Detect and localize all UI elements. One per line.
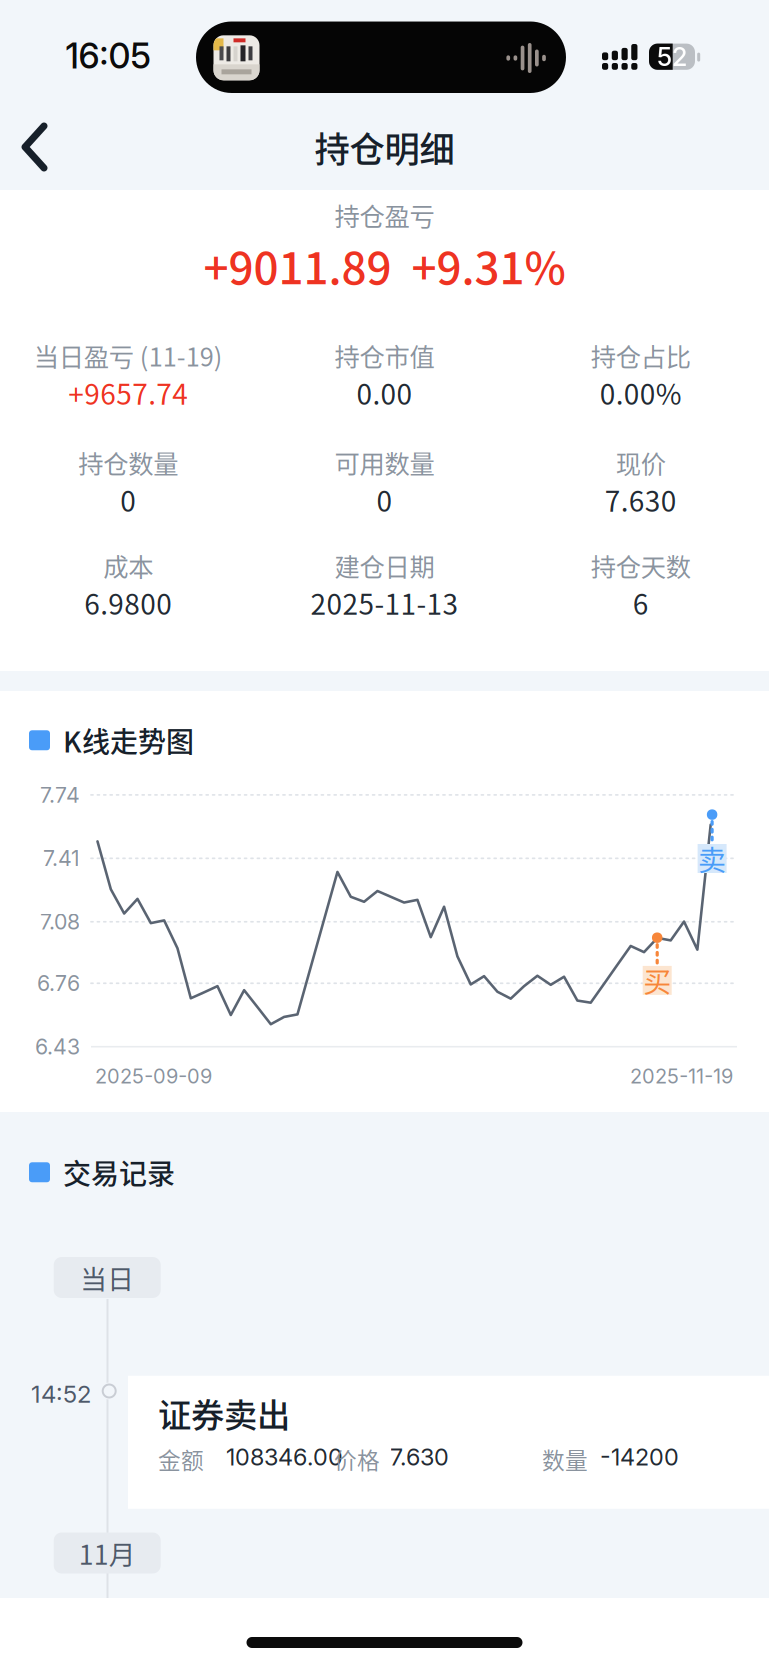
button[interactable]: 返回 [0,104,73,190]
staticText: 持仓天数 [591,547,691,584]
staticText: 持仓占比 [591,337,691,374]
staticText: 证券卖出 [158,1389,290,1437]
staticText: 2025-09-09 [95,1064,212,1088]
staticText: 持仓数量 [78,444,178,481]
staticText: 建仓日期 [334,547,434,584]
staticText: 2025-11-19 [630,1064,733,1088]
staticText: 金额 [158,1443,204,1476]
staticText: +9657.74 [68,372,188,413]
button[interactable]: 证券卖出 [128,1376,769,1509]
staticText: +9011.89 +9.31% [203,233,565,297]
staticText: 7.74 [40,782,80,808]
staticText: 6.76 [37,970,80,996]
staticText: 2025-11-13 [310,582,458,623]
staticText: -14200 [600,1443,679,1471]
staticText: 11月 [79,1534,136,1572]
staticText: 0.00% [600,372,682,413]
staticText: 成本 [103,547,153,584]
staticText: 卖 [698,838,726,879]
staticText: 现价 [616,444,666,481]
staticText: 0 [376,479,392,520]
staticText: 52 [657,41,687,72]
staticText: 7.41 [43,845,80,871]
staticText: 交易记录 [63,1152,175,1192]
staticText: 持仓市值 [334,337,434,374]
staticText: 0 [120,479,136,520]
staticText: 买 [643,960,671,1001]
staticText: 7.630 [605,479,677,520]
staticText: 持仓明细 [314,121,454,173]
staticText: 7.630 [390,1443,449,1471]
staticText: 14:52 [31,1379,91,1408]
staticText: 价格 [334,1443,380,1476]
staticText: 可用数量 [334,444,434,481]
staticText: 6 [633,582,649,623]
staticText: 108346.00 [226,1443,343,1471]
staticText: 当日 [80,1258,134,1297]
staticText: 数量 [542,1443,588,1476]
staticText: 当日盈亏 (11-19) [34,337,223,374]
staticText: 7.08 [40,909,80,935]
staticText: K线走势图 [63,720,194,760]
staticText: 6.43 [35,1034,80,1060]
staticText: 0.00 [356,372,412,413]
staticText: 16:05 [65,35,150,77]
staticText: 6.9800 [84,582,172,623]
staticText: 持仓盈亏 [334,197,434,233]
